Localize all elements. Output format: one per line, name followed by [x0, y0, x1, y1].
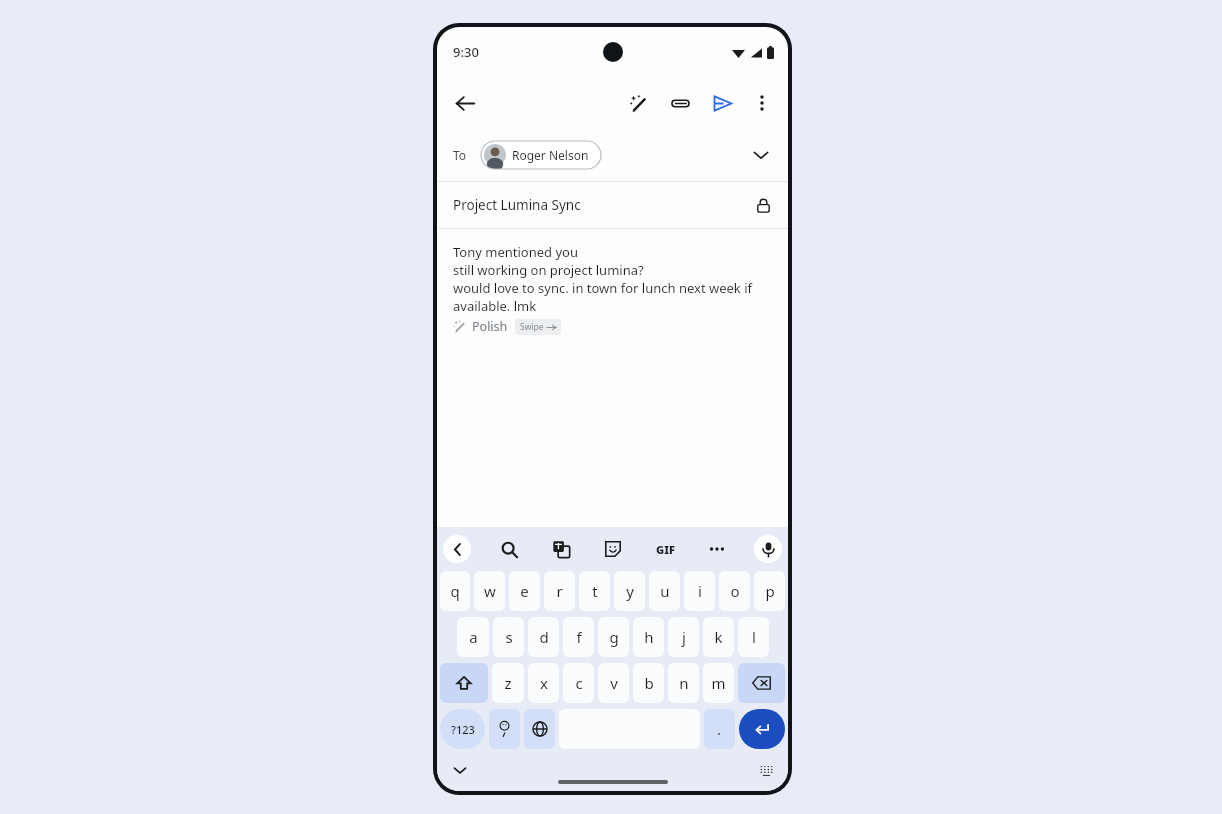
- staticText: available. lmk: [453, 297, 537, 315]
- button[interactable]: f: [563, 617, 594, 657]
- button[interactable]: i: [684, 571, 715, 611]
- staticText: d: [539, 627, 549, 647]
- button[interactable]: l: [738, 617, 769, 657]
- button[interactable]: Send: [702, 83, 742, 123]
- staticText: t: [592, 581, 598, 601]
- button[interactable]: Emoji: [489, 709, 520, 749]
- button[interactable]: g: [598, 617, 629, 657]
- button[interactable]: Backspace: [738, 663, 785, 703]
- button[interactable]: More: [702, 534, 732, 564]
- staticText: Tony mentioned you: [453, 243, 578, 261]
- button[interactable]: y: [614, 571, 645, 611]
- staticText: Roger Nelson: [512, 147, 589, 163]
- button[interactable]: Search: [494, 534, 524, 564]
- button[interactable]: Enter: [739, 709, 785, 749]
- button[interactable]: Expand recipients: [744, 138, 778, 172]
- button[interactable]: Stickers: [598, 534, 628, 564]
- button[interactable]: Roger Nelson: [481, 141, 600, 169]
- staticText: a: [469, 627, 478, 647]
- staticText: To: [453, 147, 467, 163]
- button[interactable]: Keyboard settings: [752, 756, 780, 784]
- button[interactable]: GIF: [650, 534, 680, 564]
- staticText: s: [505, 627, 513, 647]
- button[interactable]: n: [668, 663, 699, 703]
- button[interactable]: s: [493, 617, 524, 657]
- staticText: would love to sync. in town for lunch ne…: [453, 279, 753, 297]
- button[interactable]: Hide keyboard: [445, 755, 475, 785]
- staticText: 9:30: [453, 43, 479, 61]
- staticText: Project Lumina Sync: [453, 196, 581, 214]
- button[interactable]: .: [704, 709, 735, 749]
- staticText: b: [644, 673, 654, 693]
- staticText: g: [609, 627, 619, 647]
- button[interactable]: Voice input: [754, 535, 782, 563]
- button[interactable]: j: [668, 617, 699, 657]
- staticText: j: [682, 627, 686, 647]
- staticText: e: [520, 581, 529, 601]
- staticText: n: [679, 673, 689, 693]
- button[interactable]: m: [703, 663, 734, 703]
- button[interactable]: q: [440, 571, 470, 611]
- button[interactable]: t: [579, 571, 610, 611]
- button[interactable]: Project Lumina Sync: [437, 182, 788, 228]
- button[interactable]: b: [633, 663, 664, 703]
- button[interactable]: r: [544, 571, 575, 611]
- button[interactable]: Polish: [453, 318, 561, 335]
- button[interactable]: a: [457, 617, 489, 657]
- staticText: l: [752, 627, 756, 647]
- staticText: p: [765, 581, 775, 601]
- staticText: i: [698, 581, 702, 601]
- button[interactable]: Attach file: [660, 83, 700, 123]
- button[interactable]: Shift: [440, 663, 488, 703]
- button[interactable]: Change language: [524, 709, 555, 749]
- button[interactable]: Polish with AI: [618, 83, 658, 123]
- staticText: .: [717, 719, 722, 739]
- button[interactable]: h: [633, 617, 664, 657]
- button[interactable]: u: [649, 571, 680, 611]
- staticText: Polish: [472, 318, 508, 335]
- button[interactable]: Translate: [546, 534, 576, 564]
- staticText: k: [714, 627, 723, 647]
- staticText: still working on project lumina?: [453, 261, 644, 279]
- staticText: w: [484, 581, 496, 601]
- staticText: f: [576, 627, 582, 647]
- button[interactable]: p: [754, 571, 785, 611]
- button[interactable]: e: [509, 571, 540, 611]
- button[interactable]: Back: [445, 83, 485, 123]
- staticText: z: [504, 673, 512, 693]
- staticText: c: [575, 673, 583, 693]
- button[interactable]: More options: [742, 83, 782, 123]
- staticText: GIF: [656, 542, 675, 557]
- button[interactable]: Confidential mode: [752, 194, 774, 216]
- staticText: Swipe: [520, 321, 544, 333]
- staticText: x: [540, 673, 548, 693]
- staticText: y: [626, 581, 634, 601]
- button[interactable]: w: [474, 571, 505, 611]
- staticText: ?123: [451, 722, 475, 737]
- button[interactable]: k: [703, 617, 734, 657]
- button[interactable]: Previous: [443, 535, 471, 563]
- button[interactable]: d: [528, 617, 559, 657]
- button[interactable]: x: [528, 663, 559, 703]
- button[interactable]: c: [563, 663, 594, 703]
- staticText: o: [730, 581, 740, 601]
- staticText: q: [450, 581, 460, 601]
- staticText: m: [711, 673, 726, 693]
- button[interactable]: o: [719, 571, 750, 611]
- staticText: h: [644, 627, 654, 647]
- staticText: v: [610, 673, 618, 693]
- staticText: u: [660, 581, 670, 601]
- button[interactable]: z: [492, 663, 524, 703]
- staticText: r: [556, 581, 563, 601]
- button[interactable]: v: [598, 663, 629, 703]
- button[interactable]: ?123: [440, 709, 485, 749]
